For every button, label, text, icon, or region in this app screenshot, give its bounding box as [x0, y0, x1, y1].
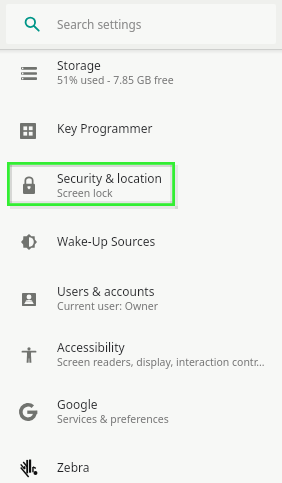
staticText: Wake-Up Sources: [57, 233, 156, 249]
button[interactable]: Wake-Up Sources: [0, 213, 282, 269]
staticText: Google: [57, 396, 98, 412]
staticText: Current user: Owner: [57, 299, 159, 313]
button[interactable]: Zebra: [0, 439, 282, 483]
staticText: Security & location: [57, 170, 163, 186]
staticText: Users & accounts: [57, 283, 155, 299]
staticText: Screen readers, display, interaction con…: [57, 355, 265, 369]
staticText: Key Programmer: [57, 120, 153, 136]
button[interactable]: Google: [0, 383, 282, 439]
button[interactable]: Key Programmer: [0, 100, 282, 156]
button[interactable]: Search settings: [6, 4, 276, 44]
staticText: Services & preferences: [57, 412, 169, 426]
staticText: Screen lock: [57, 186, 113, 200]
button[interactable]: Users & accounts: [0, 270, 282, 326]
button[interactable]: Storage: [0, 44, 282, 100]
staticText: Storage: [57, 57, 101, 73]
staticText: Search settings: [57, 16, 142, 32]
staticText: 51% used - 7.85 GB free: [57, 73, 174, 87]
staticText: Zebra: [57, 459, 90, 475]
staticText: Accessibility: [57, 339, 125, 355]
button[interactable]: Accessibility: [0, 326, 282, 382]
button[interactable]: Security & location: [0, 157, 282, 213]
